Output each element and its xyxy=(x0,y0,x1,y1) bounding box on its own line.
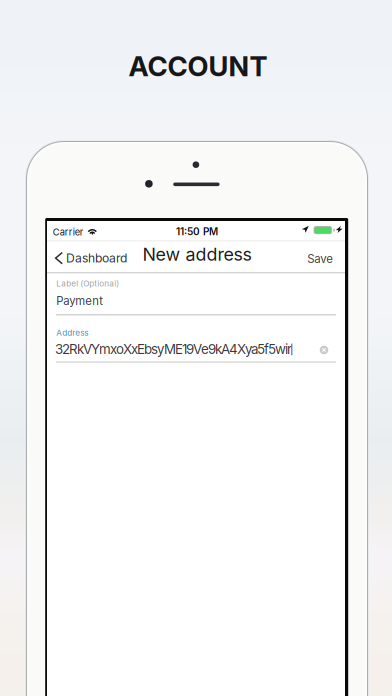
staticText: Label (Optional) xyxy=(56,279,119,288)
staticText: ACCOUNT xyxy=(128,50,267,83)
button[interactable]: Dashboard xyxy=(53,245,130,271)
staticText: Carrier xyxy=(53,226,84,238)
staticText: 32RkVYmxoXxEbsyME19Ve9kA4Xya5f5wir xyxy=(55,341,292,357)
staticText: Save xyxy=(307,252,333,266)
staticText: Address xyxy=(56,328,88,338)
staticText: Dashboard xyxy=(66,251,127,265)
staticText: 11:50 PM xyxy=(176,226,218,238)
staticText: Payment xyxy=(56,294,103,308)
staticText: New address xyxy=(142,243,251,265)
button[interactable]: Clear text xyxy=(317,343,331,357)
button[interactable]: Save xyxy=(303,245,337,273)
